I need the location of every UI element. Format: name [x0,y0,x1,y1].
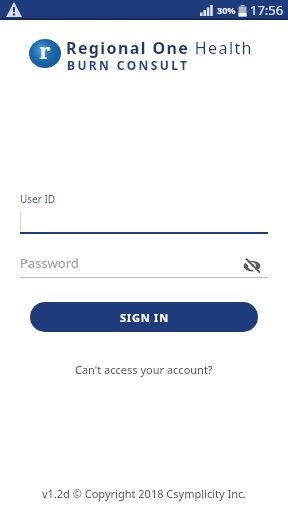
staticText: Password [20,254,79,272]
button[interactable]: Password [20,252,268,278]
staticText: 30% [217,4,236,16]
staticText: 17:56 [250,1,284,19]
staticText: v1.2d © Copyright 2018 Csymplicity Inc. [42,486,247,501]
button[interactable]: Can't access your account? [75,362,213,377]
staticText: r [29,37,61,66]
staticText: SIGN IN [120,310,169,325]
staticText: User ID [20,192,56,206]
button[interactable]: SIGN IN [30,302,258,332]
staticText: BURN CONSULT [67,57,190,73]
staticText: Regional One Health [66,37,253,59]
button[interactable] [243,257,261,275]
